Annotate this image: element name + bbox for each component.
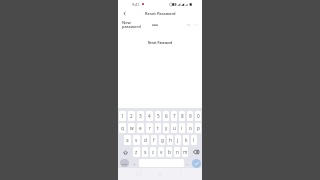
button[interactable]: Enter: [192, 159, 201, 168]
button[interactable]: d: [142, 135, 149, 145]
button[interactable]: .: [185, 159, 190, 167]
button[interactable]: p: [195, 123, 201, 133]
button[interactable]: t: [155, 123, 161, 133]
staticText: 4: [148, 113, 151, 119]
staticText: 7: [173, 113, 176, 119]
staticText: 5: [157, 113, 160, 119]
button[interactable]: q: [119, 123, 126, 133]
button[interactable]: v: [158, 147, 164, 157]
staticText: r: [149, 125, 151, 131]
button[interactable]: r: [146, 123, 153, 133]
button[interactable]: f: [151, 135, 157, 145]
button[interactable]: l: [191, 135, 197, 145]
button[interactable]: Shift: [119, 147, 131, 157]
button[interactable]: z: [133, 147, 140, 157]
staticText: s: [135, 137, 138, 143]
staticText: h: [169, 137, 172, 143]
button[interactable]: e: [137, 123, 144, 133]
staticText: i: [181, 125, 183, 131]
staticText: o: [189, 125, 192, 131]
staticText: e: [139, 125, 142, 131]
staticText: 1: [121, 113, 124, 119]
button[interactable]: m: [182, 147, 188, 157]
button[interactable]: 5: [155, 111, 161, 121]
staticText: .: [187, 160, 189, 166]
staticText: l: [193, 137, 195, 143]
staticText: 3: [139, 113, 142, 119]
staticText: n: [176, 149, 179, 155]
staticText: 9: [189, 113, 192, 119]
button[interactable]: Back: [120, 9, 129, 18]
button[interactable]: a: [124, 135, 131, 145]
staticText: d: [144, 137, 147, 143]
button[interactable]: 3: [137, 111, 144, 121]
staticText: v: [160, 149, 163, 155]
staticText: c: [152, 149, 155, 155]
staticText: ?123: [122, 162, 128, 165]
button[interactable]: 6: [163, 111, 169, 121]
button[interactable]: 4: [146, 111, 153, 121]
button[interactable]: 8: [179, 111, 185, 121]
staticText: z: [135, 149, 138, 155]
staticText: g: [161, 137, 164, 143]
button[interactable]: o: [187, 123, 193, 133]
button[interactable]: n: [174, 147, 180, 157]
staticText: x: [144, 149, 147, 155]
button[interactable]: y: [163, 123, 169, 133]
button[interactable]: u: [171, 123, 177, 133]
button[interactable]: b: [166, 147, 172, 157]
staticText: u: [173, 125, 176, 131]
button[interactable]: h: [167, 135, 173, 145]
staticText: New password: [122, 20, 141, 30]
button[interactable]: g: [159, 135, 165, 145]
staticText: a: [126, 137, 129, 143]
staticText: b: [168, 149, 171, 155]
button[interactable]: w: [128, 123, 135, 133]
button[interactable]: k: [183, 135, 189, 145]
button[interactable]: 0: [195, 111, 201, 121]
staticText: t: [157, 125, 159, 131]
button[interactable]: 9: [187, 111, 193, 121]
staticText: m: [183, 149, 188, 155]
staticText: Reset Password: [148, 41, 173, 45]
staticText: q: [121, 125, 124, 131]
button[interactable]: 2: [128, 111, 135, 121]
button[interactable]: c: [150, 147, 156, 157]
staticText: 9:41: [132, 2, 140, 7]
staticText: f: [153, 137, 155, 143]
button[interactable]: j: [175, 135, 181, 145]
staticText: y: [165, 125, 168, 131]
staticText: 0: [197, 113, 200, 119]
button[interactable]: 1: [119, 111, 126, 121]
staticText: 8: [181, 113, 184, 119]
staticText: k: [185, 137, 188, 143]
button[interactable]: s: [133, 135, 140, 145]
button[interactable]: ,: [132, 159, 138, 167]
staticText: 6: [165, 113, 168, 119]
staticText: w: [130, 125, 134, 131]
button[interactable]: 7: [171, 111, 177, 121]
staticText: 2: [130, 113, 133, 119]
button[interactable]: x: [142, 147, 148, 157]
staticText: Reset Password: [145, 11, 176, 16]
staticText: j: [177, 137, 179, 143]
button[interactable]: Reset Password: [140, 39, 181, 47]
staticText: p: [197, 125, 200, 131]
staticText: ,: [134, 160, 136, 166]
button[interactable]: Symbols: [118, 158, 131, 168]
button[interactable]: Home: [158, 172, 162, 176]
button[interactable]: i: [179, 123, 185, 133]
button[interactable]: Backspace: [190, 147, 201, 157]
